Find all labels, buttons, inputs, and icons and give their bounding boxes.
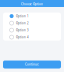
staticText: Option 3	[16, 28, 29, 32]
staticText: Option 2	[16, 21, 29, 25]
button[interactable]: Option 4	[3, 34, 61, 41]
staticText: Option 1	[16, 14, 29, 18]
button[interactable]: Continue	[3, 60, 61, 68]
button[interactable]: Option 1	[3, 13, 61, 20]
button[interactable]: Option 3	[3, 27, 61, 34]
staticText: Option 4	[16, 35, 29, 39]
staticText: Continue	[25, 63, 39, 66]
staticText: Choose Option	[21, 2, 43, 6]
button[interactable]: Option 2	[3, 20, 61, 27]
